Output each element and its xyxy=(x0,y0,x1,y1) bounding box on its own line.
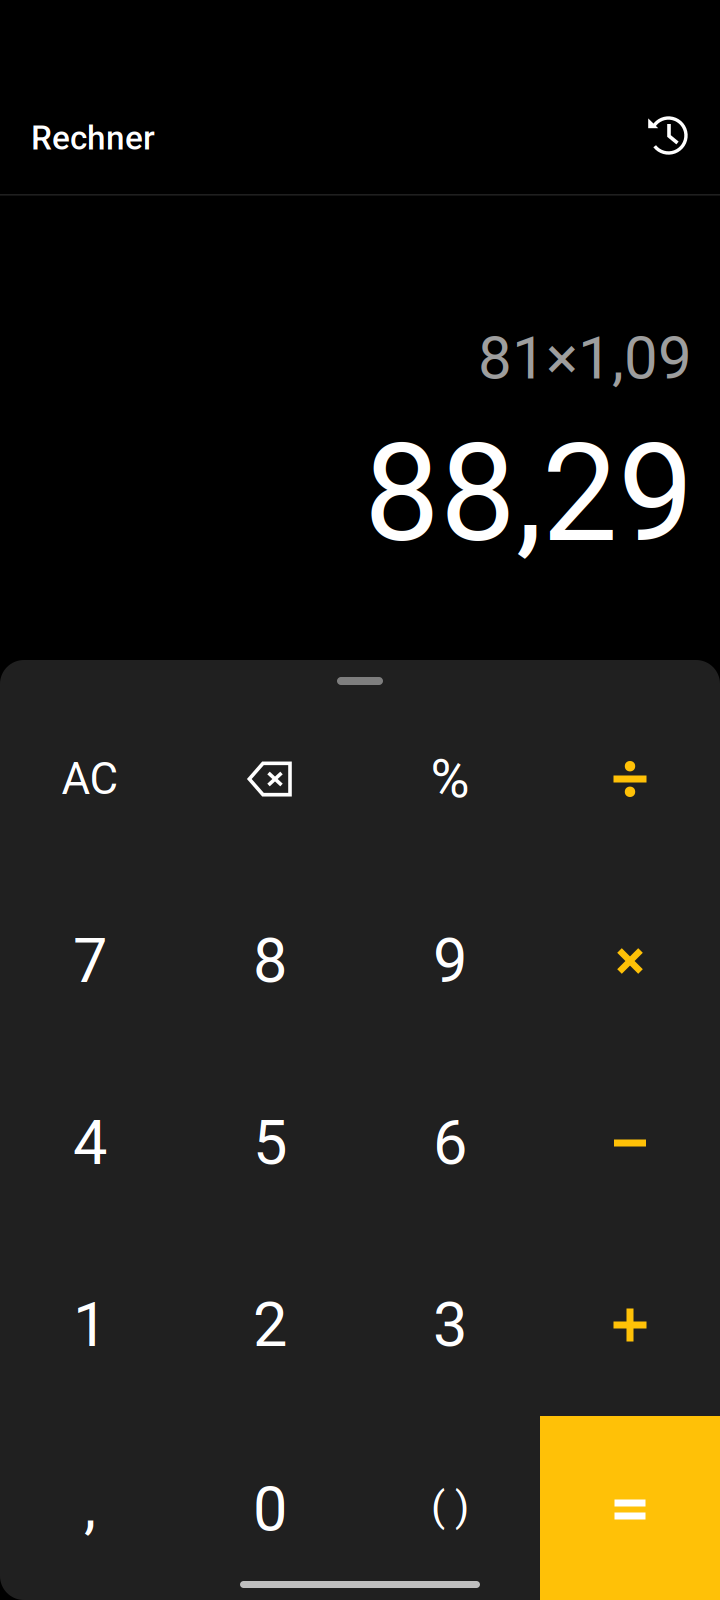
button[interactable]: AC xyxy=(0,688,180,870)
button[interactable]: Minus xyxy=(540,1052,720,1234)
staticText: AC xyxy=(61,753,118,805)
staticText: 0 xyxy=(253,1474,287,1545)
button[interactable]: ( ) xyxy=(360,1416,540,1600)
staticText: 8 xyxy=(253,925,287,997)
staticText: Rechner xyxy=(31,118,155,158)
button[interactable]: 2 xyxy=(180,1234,360,1416)
staticText: 4 xyxy=(73,1107,107,1179)
button[interactable]: , xyxy=(0,1416,180,1600)
staticText: 81×1,09 xyxy=(478,323,692,393)
button[interactable]: History xyxy=(632,99,702,169)
button[interactable]: Equals xyxy=(540,1416,720,1600)
staticText: 3 xyxy=(433,1289,467,1361)
button[interactable]: 3 xyxy=(360,1234,540,1416)
button[interactable]: 8 xyxy=(180,870,360,1052)
staticText: 7 xyxy=(73,925,107,997)
button[interactable]: Divide xyxy=(540,688,720,870)
button[interactable]: 7 xyxy=(0,870,180,1052)
button[interactable]: % xyxy=(360,688,540,870)
button[interactable]: 0 xyxy=(180,1416,360,1600)
staticText: 2 xyxy=(253,1289,287,1361)
button[interactable]: 6 xyxy=(360,1052,540,1234)
staticText: 88,29 xyxy=(364,415,694,573)
staticText: 1 xyxy=(73,1289,107,1361)
button[interactable]: Backspace xyxy=(180,688,360,870)
staticText: % xyxy=(430,748,469,810)
button[interactable]: Plus xyxy=(540,1234,720,1416)
button[interactable]: 4 xyxy=(0,1052,180,1234)
staticText: 9 xyxy=(433,925,467,997)
staticText: 6 xyxy=(433,1107,467,1179)
button[interactable]: Multiply xyxy=(540,870,720,1052)
button[interactable]: 1 xyxy=(0,1234,180,1416)
staticText: ( ) xyxy=(431,1482,469,1531)
button[interactable]: 5 xyxy=(180,1052,360,1234)
staticText: 5 xyxy=(253,1107,287,1179)
button[interactable]: 9 xyxy=(360,870,540,1052)
staticText: , xyxy=(84,1471,96,1542)
